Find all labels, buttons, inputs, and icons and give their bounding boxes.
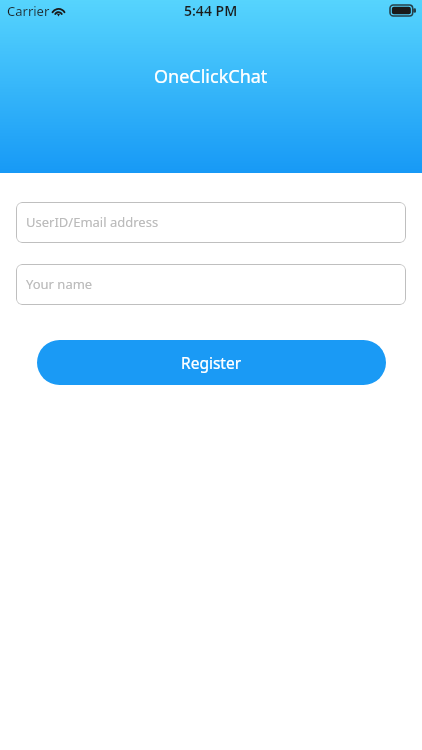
staticText: 5:44 PM <box>184 1 238 20</box>
other: Wi-Fi signal <box>51 5 66 16</box>
other: Battery full <box>390 5 416 16</box>
staticText: OneClickChat <box>154 64 268 89</box>
staticText: Your name <box>26 275 93 293</box>
staticText: UserID/Email address <box>26 213 159 231</box>
button[interactable]: UserID/Email address <box>16 202 406 243</box>
staticText: Register <box>181 352 242 373</box>
button[interactable]: Your name <box>16 264 406 305</box>
staticText: Carrier <box>7 2 50 20</box>
button[interactable]: Register <box>37 340 386 385</box>
